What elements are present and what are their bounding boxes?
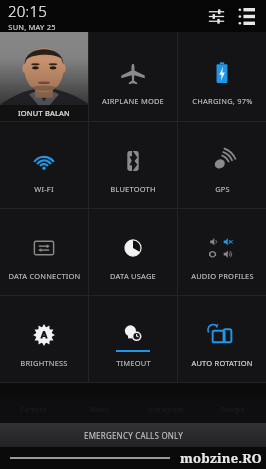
staticText: IONUT BALAN: [18, 108, 70, 118]
staticText: BLUETOOTH: [110, 184, 156, 194]
button[interactable]: GPS: [178, 122, 266, 208]
staticText: DATA CONNECTION: [8, 271, 81, 281]
staticText: TIMEOUT: [116, 358, 151, 368]
staticText: Google: [220, 405, 245, 415]
staticText: GPS: [215, 184, 230, 194]
button[interactable]: TIMEOUT: [89, 296, 177, 382]
button[interactable]: Notifications list: [233, 3, 259, 29]
staticText: 20:15: [8, 1, 47, 21]
staticText: AUTO ROTATION: [191, 358, 253, 368]
staticText: CHARGING, 97%: [192, 96, 253, 106]
staticText: EMERGENCY CALLS ONLY: [84, 430, 183, 441]
staticText: Instagram: [148, 405, 184, 415]
staticText: AIRPLANE MODE: [102, 96, 164, 106]
button[interactable]: Settings: [203, 3, 229, 29]
button[interactable]: AUTO ROTATION: [178, 296, 266, 382]
button[interactable]: AIRPLANE MODE: [89, 32, 177, 121]
button[interactable]: DATA USAGE: [89, 209, 177, 295]
staticText: Camera: [20, 405, 47, 415]
staticText: WI-FI: [34, 184, 54, 194]
button[interactable]: Close notification shade: [0, 447, 266, 469]
staticText: SUN, MAY 25: [8, 22, 56, 32]
staticText: AUDIO PROFILES: [191, 271, 254, 281]
button[interactable]: AUDIO PROFILES: [178, 209, 266, 295]
button[interactable]: WI-FI: [0, 122, 88, 208]
staticText: DATA USAGE: [110, 271, 156, 281]
button[interactable]: BRIGHTNESS: [0, 296, 88, 382]
button[interactable]: BLUETOOTH: [89, 122, 177, 208]
button[interactable]: Profile Ionut Balan: [0, 32, 88, 121]
button[interactable]: CHARGING, 97%: [178, 32, 266, 121]
staticText: BRIGHTNESS: [20, 358, 68, 368]
button[interactable]: DATA CONNECTION: [0, 209, 88, 295]
staticText: mobzine.RO: [180, 449, 262, 467]
staticText: Music: [89, 405, 110, 415]
